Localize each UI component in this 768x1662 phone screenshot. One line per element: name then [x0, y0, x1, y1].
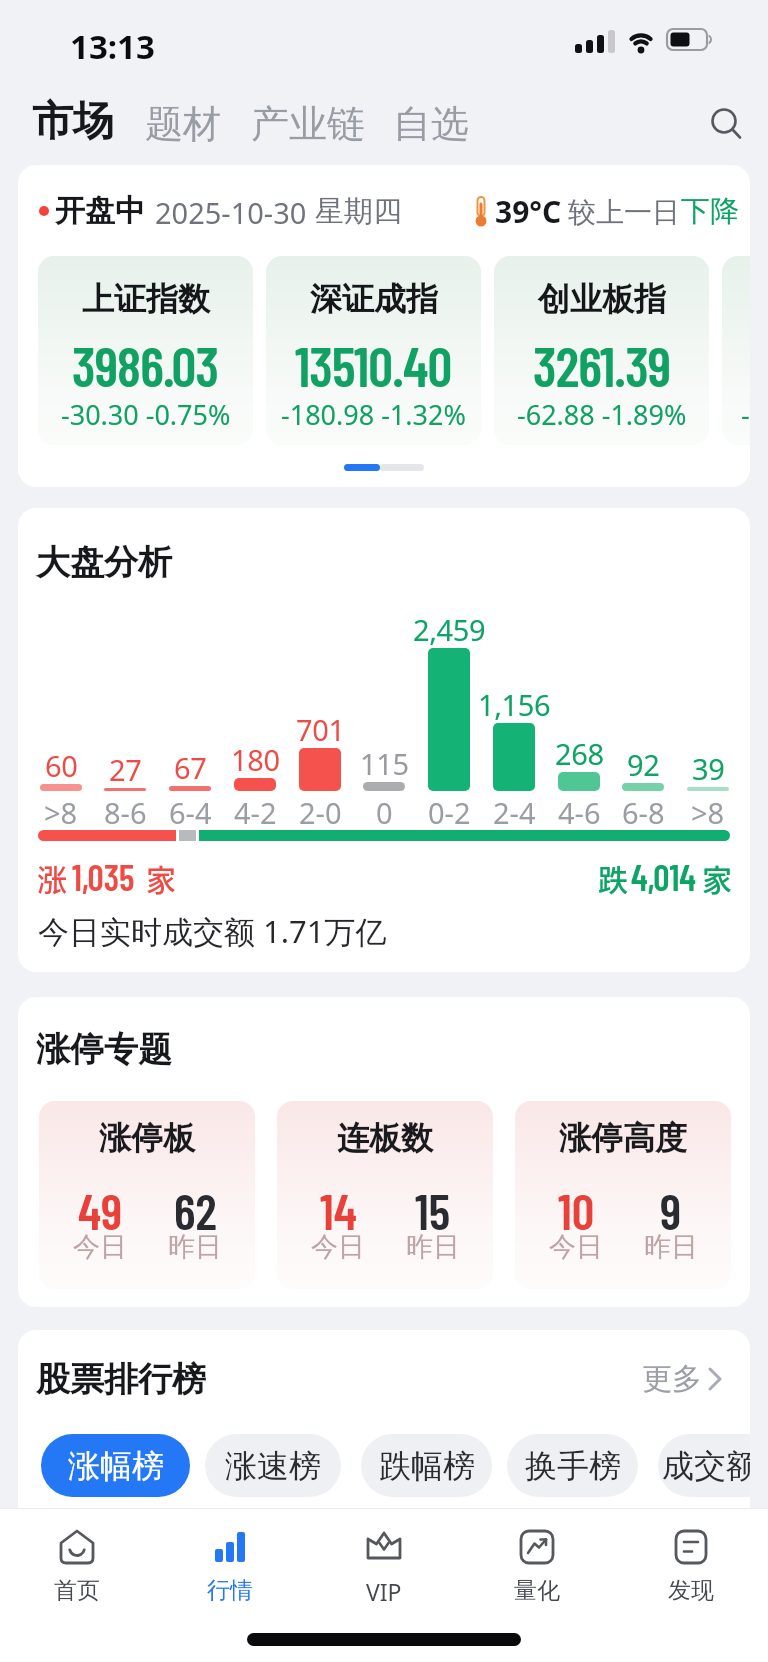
staticText: 67	[174, 748, 207, 782]
staticText: 上证指数	[82, 279, 210, 319]
staticText: 49	[78, 1180, 123, 1226]
staticText: 昨日	[644, 1230, 698, 1264]
staticText: 涨速榜	[225, 1446, 321, 1486]
button[interactable]: 涨速榜	[205, 1434, 341, 1497]
staticText: 行情	[207, 1576, 253, 1604]
staticText: 4-2	[234, 793, 277, 827]
staticText: VIP	[366, 1576, 402, 1604]
staticText: 发现	[668, 1576, 714, 1604]
button[interactable]: 量化	[477, 1522, 597, 1622]
staticText: 创业板指	[538, 279, 666, 319]
staticText: 涨	[37, 856, 67, 890]
staticText: 0	[376, 793, 393, 827]
button[interactable]: 连板数	[277, 1101, 493, 1289]
button[interactable]: VIP	[324, 1522, 444, 1622]
staticText: 连板数	[337, 1118, 433, 1158]
staticText: 开盘中	[55, 192, 145, 230]
staticText: 跌	[598, 856, 628, 890]
staticText: 15	[415, 1180, 451, 1226]
staticText: 量化	[514, 1576, 560, 1604]
button[interactable]: 题材	[141, 100, 225, 142]
staticText: 701	[296, 710, 345, 744]
staticText: 自选	[393, 100, 469, 142]
staticText: 今日实时成交额 1.71万亿	[38, 910, 387, 948]
button[interactable]: 跌幅榜	[361, 1434, 492, 1497]
staticText: 60	[45, 746, 78, 780]
button[interactable]: 涨停板	[39, 1101, 255, 1289]
button[interactable]: 行情	[170, 1522, 290, 1622]
staticText: 39	[692, 749, 725, 783]
staticText: 下降	[681, 193, 739, 229]
staticText: -10.20 -1.09%	[741, 396, 750, 430]
staticText: 大盘分析	[36, 541, 172, 581]
staticText: 6-8	[622, 793, 665, 827]
staticText: 今日	[549, 1230, 603, 1264]
staticText: 268	[555, 734, 604, 768]
staticText: 2-0	[299, 793, 342, 827]
staticText: 首页	[54, 1576, 100, 1604]
staticText: 62	[174, 1180, 217, 1226]
button[interactable]: 产业链	[246, 100, 370, 142]
button[interactable]: 涨停高度	[515, 1101, 731, 1289]
staticText: 6-4	[169, 793, 212, 827]
staticText: 0-2	[428, 793, 471, 827]
staticText: 深证成指	[310, 279, 438, 319]
button[interactable]: 市场	[26, 96, 120, 142]
staticText: 涨停专题	[36, 1028, 172, 1068]
button[interactable]: 科创50	[722, 256, 750, 445]
staticText: 2-4	[493, 793, 536, 827]
staticText: 1,156	[478, 685, 551, 719]
staticText: 家	[702, 856, 732, 890]
staticText: -62.88 -1.89%	[517, 396, 687, 430]
staticText: 180	[231, 740, 280, 774]
staticText: 3986.03	[72, 332, 219, 390]
staticText: 4,014	[631, 855, 696, 891]
staticText: 更多	[642, 1360, 702, 1398]
staticText: 涨停高度	[559, 1118, 687, 1158]
button[interactable]: 涨幅榜	[41, 1434, 190, 1497]
staticText: 市场	[32, 96, 114, 142]
staticText: -30.30 -0.75%	[61, 396, 231, 430]
staticText: -180.98 -1.32%	[281, 396, 466, 430]
button[interactable]	[706, 104, 746, 144]
staticText: 2025-10-30	[155, 193, 307, 229]
button[interactable]: 换手榜	[507, 1434, 638, 1497]
staticText: 92	[627, 745, 660, 779]
staticText: 115	[360, 744, 409, 778]
staticText: 13:13	[70, 24, 155, 58]
staticText: 产业链	[251, 100, 365, 142]
staticText: 9	[660, 1180, 682, 1226]
staticText: 1,035	[72, 855, 135, 891]
staticText: 39°C	[495, 191, 562, 231]
button[interactable]: 深证成指	[266, 256, 481, 445]
staticText: 27	[109, 750, 142, 784]
staticText: 4-6	[558, 793, 601, 827]
staticText: >8	[691, 793, 725, 827]
staticText: 3261.39	[533, 332, 671, 390]
button[interactable]: 首页	[17, 1522, 137, 1622]
staticText: 8-6	[104, 793, 147, 827]
staticText: 今日	[73, 1230, 127, 1264]
staticText: 家	[146, 856, 176, 890]
staticText: 13510.40	[295, 332, 452, 390]
staticText: 成交额榜	[662, 1446, 750, 1486]
button[interactable]: 上证指数	[38, 256, 253, 445]
staticText: 跌幅榜	[379, 1446, 475, 1486]
button[interactable]: 发现	[631, 1522, 751, 1622]
button[interactable]: 自选	[389, 100, 473, 142]
staticText: 股票排行榜	[36, 1358, 206, 1398]
staticText: 2,459	[413, 610, 486, 644]
staticText: 较上一日	[568, 195, 680, 230]
button[interactable]: 成交额榜	[658, 1434, 750, 1497]
button[interactable]: 更多	[618, 1360, 728, 1398]
staticText: 涨停板	[99, 1118, 195, 1158]
staticText: 14	[320, 1180, 357, 1226]
staticText: 10	[558, 1180, 595, 1226]
staticText: >8	[44, 793, 78, 827]
staticText: 昨日	[168, 1230, 222, 1264]
staticText: 昨日	[406, 1230, 460, 1264]
staticText: 涨幅榜	[68, 1446, 164, 1486]
staticText: 星期四	[315, 193, 402, 229]
button[interactable]: 创业板指	[494, 256, 709, 445]
staticText: 换手榜	[525, 1446, 621, 1486]
